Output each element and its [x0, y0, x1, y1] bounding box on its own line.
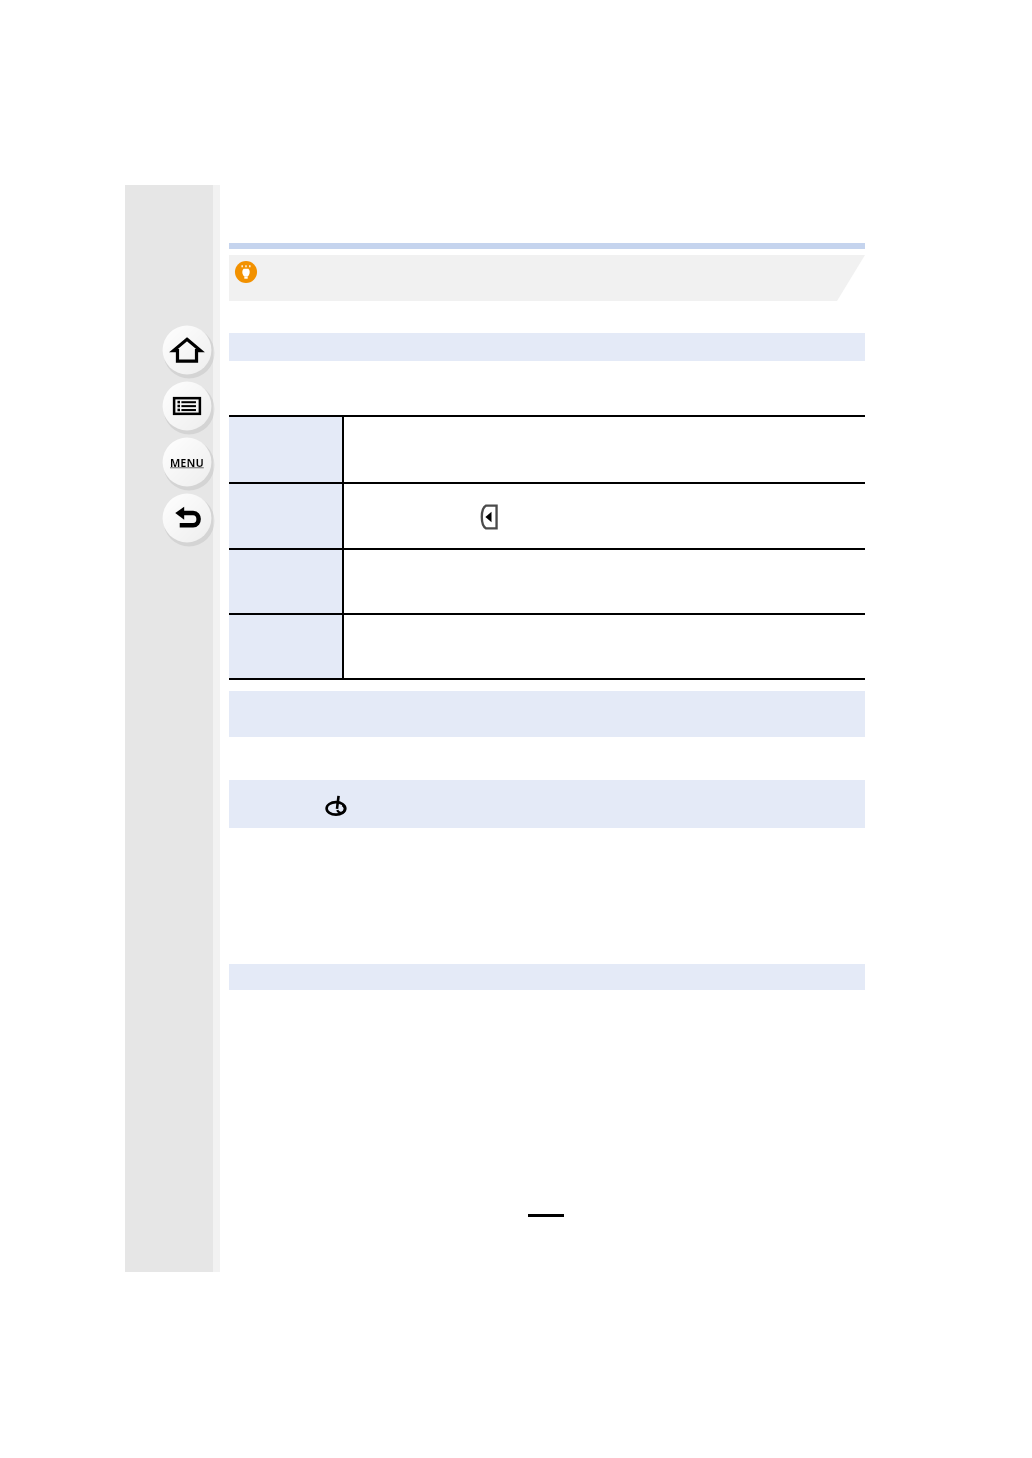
button[interactable]: Menu: [161, 436, 213, 488]
button[interactable]: [229, 613, 342, 678]
button[interactable]: [229, 415, 342, 482]
button[interactable]: [229, 780, 865, 828]
button[interactable]: Back: [161, 492, 213, 544]
other: Back: [173, 504, 201, 532]
other: Home: [173, 336, 201, 364]
staticText: MENU: [170, 455, 204, 470]
button[interactable]: List: [161, 380, 213, 432]
other: Menu: [167, 442, 207, 482]
button[interactable]: [229, 548, 342, 613]
button[interactable]: Home: [161, 324, 213, 376]
button[interactable]: [229, 482, 342, 548]
other: List: [173, 392, 201, 420]
